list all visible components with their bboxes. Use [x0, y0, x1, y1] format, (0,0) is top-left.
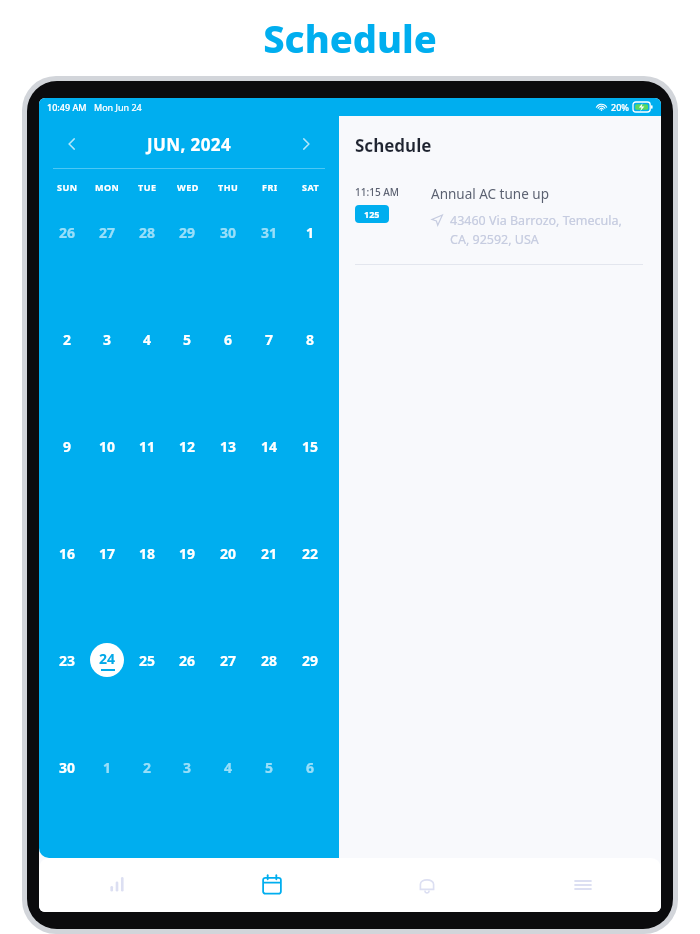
button[interactable]: Next month — [291, 129, 321, 159]
staticText: Schedule — [263, 12, 437, 64]
button[interactable]: 12 — [167, 429, 208, 536]
staticText: 7 — [265, 330, 274, 349]
staticText: TUE — [138, 181, 157, 193]
staticText: 23 — [59, 651, 76, 670]
button[interactable]: 29 — [290, 643, 331, 750]
button[interactable]: 27 — [208, 643, 249, 750]
staticText: 29 — [179, 223, 196, 242]
button[interactable]: 13 — [208, 429, 249, 536]
button[interactable]: 29 — [167, 215, 208, 322]
button[interactable]: 1 — [290, 215, 331, 322]
button[interactable]: 28 — [249, 643, 290, 750]
button[interactable]: 25 — [127, 643, 167, 750]
button[interactable]: Statistics — [39, 858, 194, 912]
staticText: 10:49 AM — [47, 101, 87, 113]
button[interactable]: 1 — [87, 750, 127, 857]
button[interactable]: 10 — [87, 429, 127, 536]
staticText: THU — [218, 181, 239, 193]
staticText: 11:15 AM — [355, 185, 399, 199]
button[interactable]: 5 — [249, 750, 290, 857]
staticText: 27 — [99, 223, 116, 242]
button[interactable]: 28 — [127, 215, 167, 322]
staticText: 15 — [302, 437, 319, 456]
button[interactable]: 21 — [249, 536, 290, 643]
button[interactable]: Menu — [505, 858, 661, 912]
button[interactable]: 9 — [47, 429, 87, 536]
staticText: MON — [95, 181, 120, 193]
button[interactable]: 4 — [127, 322, 167, 429]
staticText: Mon Jun 24 — [94, 101, 142, 113]
button[interactable]: Calendar — [194, 858, 349, 912]
staticText: SAT — [302, 181, 320, 193]
button[interactable]: 16 — [47, 536, 87, 643]
staticText: 19 — [179, 544, 196, 563]
staticText: 25 — [139, 651, 156, 670]
button[interactable]: 30 — [47, 750, 87, 857]
staticText: 24 — [99, 649, 116, 668]
staticText: 9 — [63, 437, 72, 456]
staticText: FRI — [262, 181, 278, 193]
staticText: 27 — [220, 651, 237, 670]
staticText: Schedule — [355, 134, 432, 157]
button[interactable]: 7 — [249, 322, 290, 429]
button[interactable]: 20 — [208, 536, 249, 643]
button[interactable]: 27 — [87, 215, 127, 322]
staticText: 22 — [302, 544, 319, 563]
staticText: 4 — [143, 330, 152, 349]
button[interactable]: 24 — [87, 643, 127, 750]
button[interactable]: 4 — [208, 750, 249, 857]
button[interactable]: 5 — [167, 322, 208, 429]
staticText: 125 — [364, 208, 380, 220]
staticText: 1 — [306, 223, 315, 242]
staticText: 16 — [59, 544, 76, 563]
staticText: 43460 Via Barrozo, Temecula, CA, 92592, … — [450, 212, 643, 248]
staticText: 20 — [220, 544, 237, 563]
staticText: 8 — [306, 330, 315, 349]
button[interactable]: 11 — [127, 429, 167, 536]
staticText: 5 — [183, 330, 192, 349]
staticText: WED — [177, 181, 199, 193]
staticText: 18 — [139, 544, 156, 563]
button[interactable]: 8 — [290, 322, 331, 429]
staticText: 5 — [265, 758, 274, 777]
staticText: SUN — [57, 181, 78, 193]
staticText: JUN, 2024 — [147, 133, 232, 156]
staticText: 2 — [63, 330, 72, 349]
staticText: 28 — [261, 651, 278, 670]
button[interactable]: 23 — [47, 643, 87, 750]
button[interactable]: 3 — [167, 750, 208, 857]
button[interactable]: 2 — [127, 750, 167, 857]
button[interactable]: 26 — [167, 643, 208, 750]
staticText: 1 — [103, 758, 112, 777]
staticText: 14 — [261, 437, 278, 456]
button[interactable]: Notifications — [349, 858, 505, 912]
staticText: 29 — [302, 651, 319, 670]
button[interactable]: 14 — [249, 429, 290, 536]
button[interactable]: 30 — [208, 215, 249, 322]
button[interactable]: 11:15 AM — [355, 185, 643, 248]
staticText: 26 — [179, 651, 196, 670]
button[interactable]: 17 — [87, 536, 127, 643]
staticText: 31 — [261, 223, 278, 242]
staticText: 12 — [179, 437, 196, 456]
button[interactable]: 26 — [47, 215, 87, 322]
staticText: 3 — [183, 758, 192, 777]
staticText: 30 — [59, 758, 76, 777]
button[interactable]: 18 — [127, 536, 167, 643]
button[interactable]: 31 — [249, 215, 290, 322]
staticText: 2 — [143, 758, 152, 777]
staticText: 4 — [224, 758, 233, 777]
staticText: 11 — [139, 437, 156, 456]
button[interactable]: 6 — [208, 322, 249, 429]
staticText: 10 — [99, 437, 116, 456]
button[interactable]: 3 — [87, 322, 127, 429]
staticText: 6 — [306, 758, 315, 777]
button[interactable]: 15 — [290, 429, 331, 536]
button[interactable]: 6 — [290, 750, 331, 857]
button[interactable]: 19 — [167, 536, 208, 643]
button[interactable]: 22 — [290, 536, 331, 643]
staticText: 20% — [611, 101, 629, 113]
staticText: 21 — [261, 544, 278, 563]
button[interactable]: Previous month — [57, 129, 87, 159]
button[interactable]: 2 — [47, 322, 87, 429]
